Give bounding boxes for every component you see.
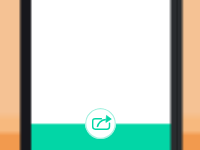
- button[interactable]: Share: [85, 108, 116, 139]
